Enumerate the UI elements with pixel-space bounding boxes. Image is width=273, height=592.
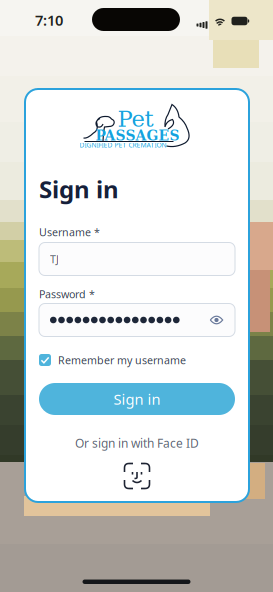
button[interactable]: Sign in [39, 383, 235, 415]
staticText: Or sign in with Face ID [75, 435, 199, 451]
button[interactable]: Show password [209, 313, 224, 326]
staticText: 7:10 [35, 10, 63, 30]
button[interactable]: Sign in with Face ID [122, 461, 151, 490]
staticText: Sign in [39, 173, 119, 205]
staticText: Username * [39, 225, 100, 239]
button[interactable]: Remember my username [39, 353, 235, 367]
staticText: DIGNIFIED PET CREMATION [79, 141, 166, 149]
staticText: Sign in [113, 389, 160, 409]
staticText: Password * [39, 287, 95, 301]
staticText: Pet [117, 106, 153, 132]
staticText: TJ [50, 252, 59, 266]
staticText: PASSAGES [95, 127, 179, 144]
staticText: Remember my username [58, 353, 186, 367]
